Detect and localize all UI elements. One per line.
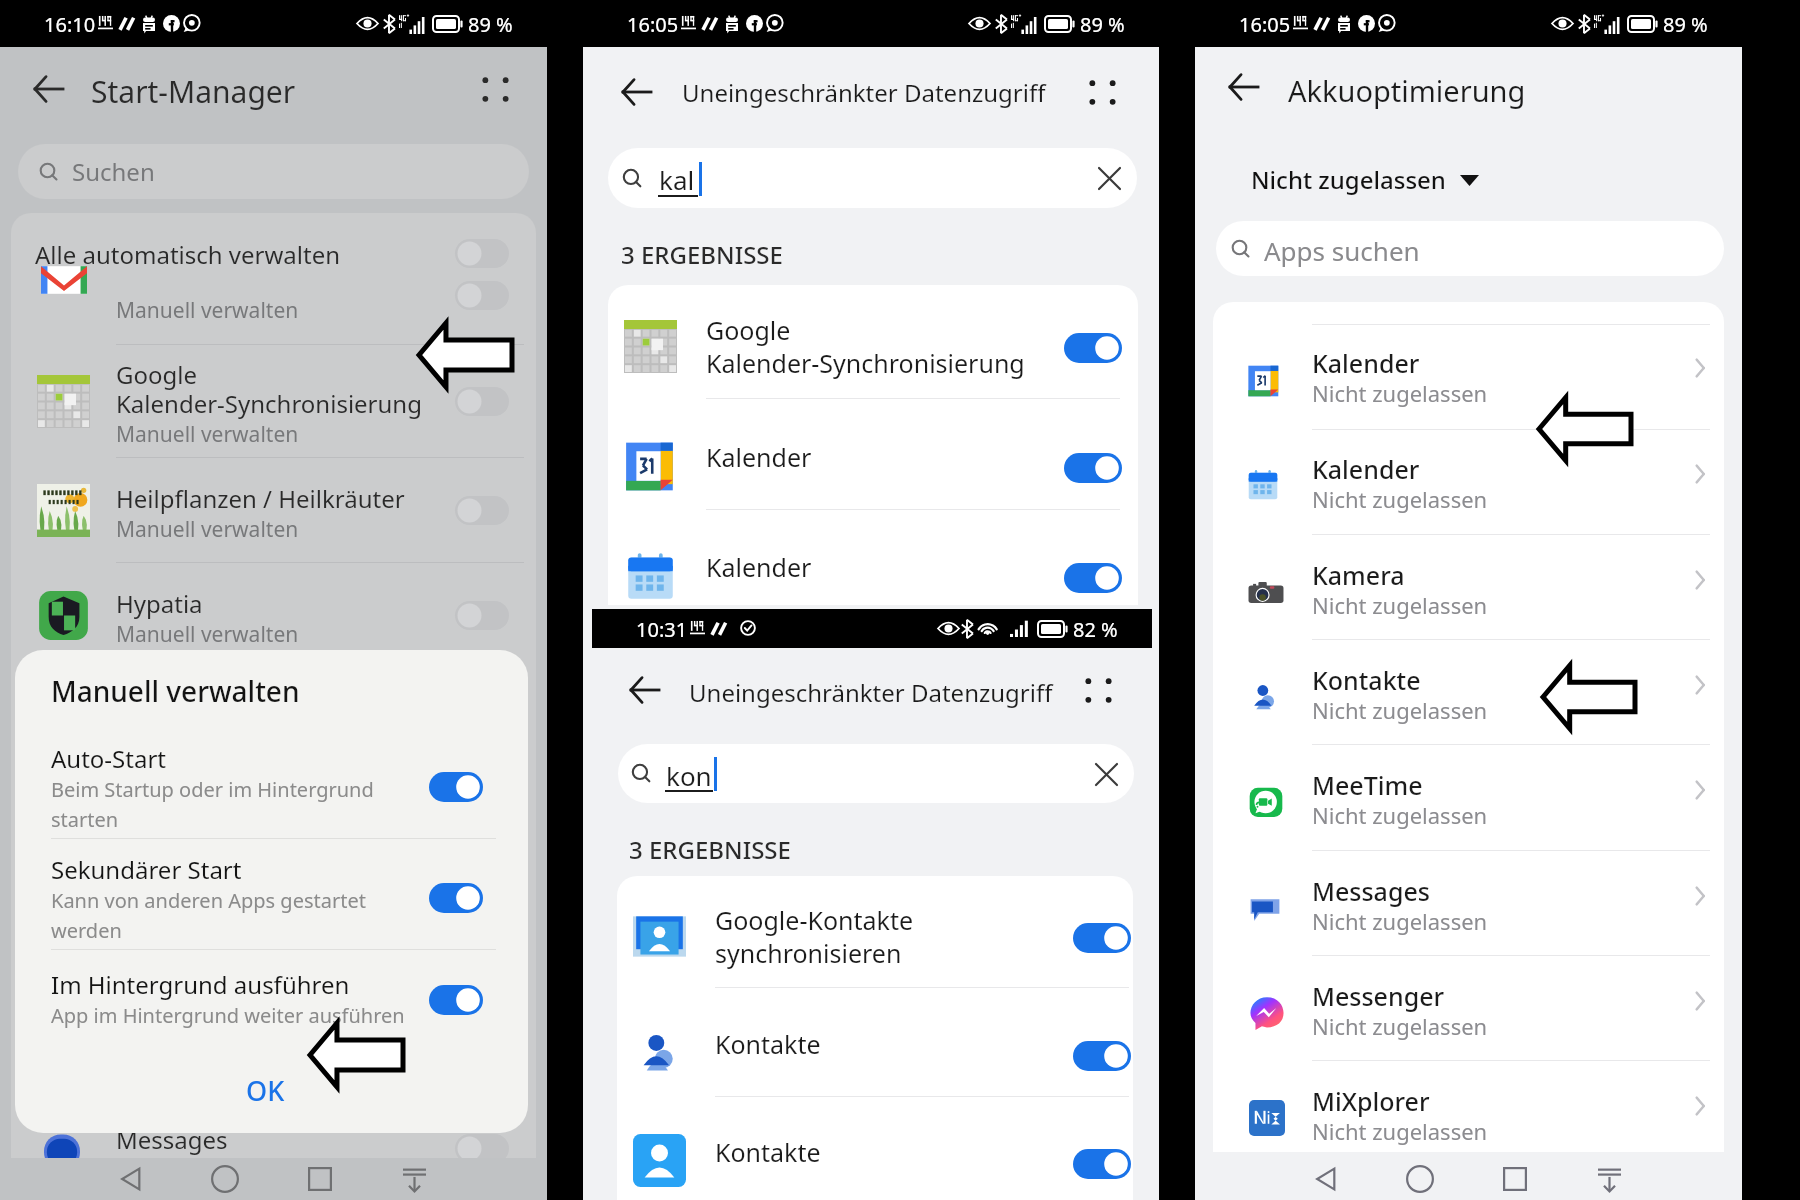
button[interactable]: Weitere Optionen xyxy=(472,66,518,112)
staticText: Suchen xyxy=(72,155,155,188)
staticText: Manuell verwalten xyxy=(116,515,299,544)
staticText: 10:31 xyxy=(636,616,688,643)
staticText: Manuell verwalten xyxy=(116,420,299,449)
button[interactable] xyxy=(1073,923,1131,953)
button[interactable] xyxy=(1073,1149,1131,1179)
button[interactable]: OK xyxy=(230,1068,301,1113)
button[interactable]: Startbildschirm xyxy=(204,1158,246,1200)
staticText: Nicht zugelassen xyxy=(1312,1011,1488,1041)
staticText: Manuell verwalten xyxy=(51,672,300,710)
button[interactable]: kal xyxy=(608,148,1137,208)
staticText: Kalender xyxy=(1312,452,1420,486)
staticText: Kontakte xyxy=(715,1135,821,1169)
button[interactable]: Zurück xyxy=(1305,1158,1347,1200)
button[interactable] xyxy=(1213,842,1724,947)
button[interactable]: Nicht zugelassen xyxy=(1251,163,1485,196)
staticText: Kalender xyxy=(1312,346,1420,380)
button[interactable] xyxy=(1213,420,1724,525)
button[interactable]: Zurück xyxy=(1221,64,1267,110)
staticText: Nicht zugelassen xyxy=(1312,378,1488,408)
button[interactable]: kon xyxy=(618,744,1134,803)
staticText: Heilpflanzen / Heilkräuter xyxy=(116,482,405,515)
staticText: OK xyxy=(246,1072,285,1109)
staticText: Auto-Start xyxy=(51,742,166,775)
staticText: Beim Startup oder im Hintergrund starten xyxy=(51,776,374,833)
button[interactable]: Zurück xyxy=(614,69,660,115)
button[interactable]: Apps suchen xyxy=(1216,221,1724,276)
staticText: Apps suchen xyxy=(1264,233,1420,268)
button[interactable]: Letzte Apps xyxy=(299,1158,341,1200)
button[interactable]: Zurück xyxy=(26,66,72,112)
staticText: Start-Manager xyxy=(91,71,296,112)
staticText: 16:05 xyxy=(1239,11,1291,38)
staticText: Nicht zugelassen xyxy=(1312,590,1488,620)
staticText: Google Kalender-Synchronisierung xyxy=(116,358,422,420)
button[interactable]: Löschen xyxy=(1091,160,1127,196)
button[interactable] xyxy=(1073,1041,1131,1071)
button[interactable] xyxy=(1213,631,1724,736)
staticText: Kalender xyxy=(706,550,812,584)
button[interactable] xyxy=(1213,947,1724,1052)
staticText: Nicht zugelassen xyxy=(1251,163,1446,196)
button[interactable]: Benachrichtigungen xyxy=(1588,1158,1630,1200)
button[interactable] xyxy=(1213,1052,1724,1152)
staticText: Uneingeschränkter Datenzugriff xyxy=(689,676,1053,709)
staticText: 89 % xyxy=(1663,11,1708,38)
staticText: Nicht zugelassen xyxy=(1312,484,1488,514)
staticText: Kamera xyxy=(1312,558,1405,592)
staticText: kon xyxy=(666,758,712,793)
button[interactable] xyxy=(1064,333,1122,363)
staticText: Kalender xyxy=(706,440,812,474)
button[interactable]: Letzte Apps xyxy=(1494,1158,1536,1200)
staticText: Manuell verwalten xyxy=(116,296,299,325)
button[interactable]: Startbildschirm xyxy=(1399,1158,1441,1200)
staticText: kal xyxy=(659,162,695,197)
staticText: Messages xyxy=(1312,874,1430,908)
staticText: Messenger xyxy=(1312,979,1445,1013)
button[interactable]: Weitere Optionen xyxy=(1075,667,1121,713)
staticText: 16:05 xyxy=(627,11,679,38)
staticText: 16:10 xyxy=(44,11,96,38)
staticText: Messages xyxy=(116,1123,228,1156)
staticText: MeeTime xyxy=(1312,768,1423,802)
staticText: Manuell verwalten xyxy=(116,620,299,649)
button[interactable]: Weitere Optionen xyxy=(1079,69,1125,115)
button[interactable] xyxy=(1213,314,1724,419)
staticText: Nicht zugelassen xyxy=(1312,1116,1488,1146)
staticText: Uneingeschränkter Datenzugriff xyxy=(682,76,1046,109)
staticText: 82 % xyxy=(1073,616,1118,643)
staticText: 89 % xyxy=(468,11,513,38)
staticText: Nicht zugelassen xyxy=(1312,800,1488,830)
button[interactable]: Zurück xyxy=(110,1158,152,1200)
staticText: Hypatia xyxy=(116,587,203,620)
staticText: 89 % xyxy=(1080,11,1125,38)
staticText: 3 ERGEBNISSE xyxy=(621,238,783,271)
staticText: Google-Kontakte synchronisieren xyxy=(715,903,914,970)
button[interactable]: Suchen xyxy=(18,144,529,199)
staticText: Kontakte xyxy=(1312,663,1421,697)
button[interactable] xyxy=(1213,526,1724,631)
staticText: Sekundärer Start xyxy=(51,853,242,886)
staticText: MiXplorer xyxy=(1312,1084,1430,1118)
staticText: Im Hintergrund ausführen xyxy=(51,968,350,1001)
button[interactable] xyxy=(1064,563,1122,593)
staticText: Nicht zugelassen xyxy=(1312,695,1488,725)
staticText: Google Kalender-Synchronisierung xyxy=(706,313,1025,380)
button[interactable]: Benachrichtigungen xyxy=(393,1158,435,1200)
staticText: Alle automatisch verwalten xyxy=(35,238,341,271)
staticText: Akkuoptimierung xyxy=(1288,71,1526,110)
staticText: Kontakte xyxy=(715,1027,821,1061)
staticText: Nicht zugelassen xyxy=(1312,906,1488,936)
staticText: 3 ERGEBNISSE xyxy=(629,833,791,866)
staticText: App im Hintergrund weiter ausführen xyxy=(51,1002,405,1029)
button[interactable] xyxy=(1064,453,1122,483)
staticText: Kann von anderen Apps gestartet werden xyxy=(51,887,366,944)
button[interactable]: Alle automatisch verwalten xyxy=(11,213,536,285)
button[interactable]: Zurück xyxy=(622,667,668,713)
button[interactable]: Löschen xyxy=(1088,756,1124,792)
button[interactable] xyxy=(1213,736,1724,841)
